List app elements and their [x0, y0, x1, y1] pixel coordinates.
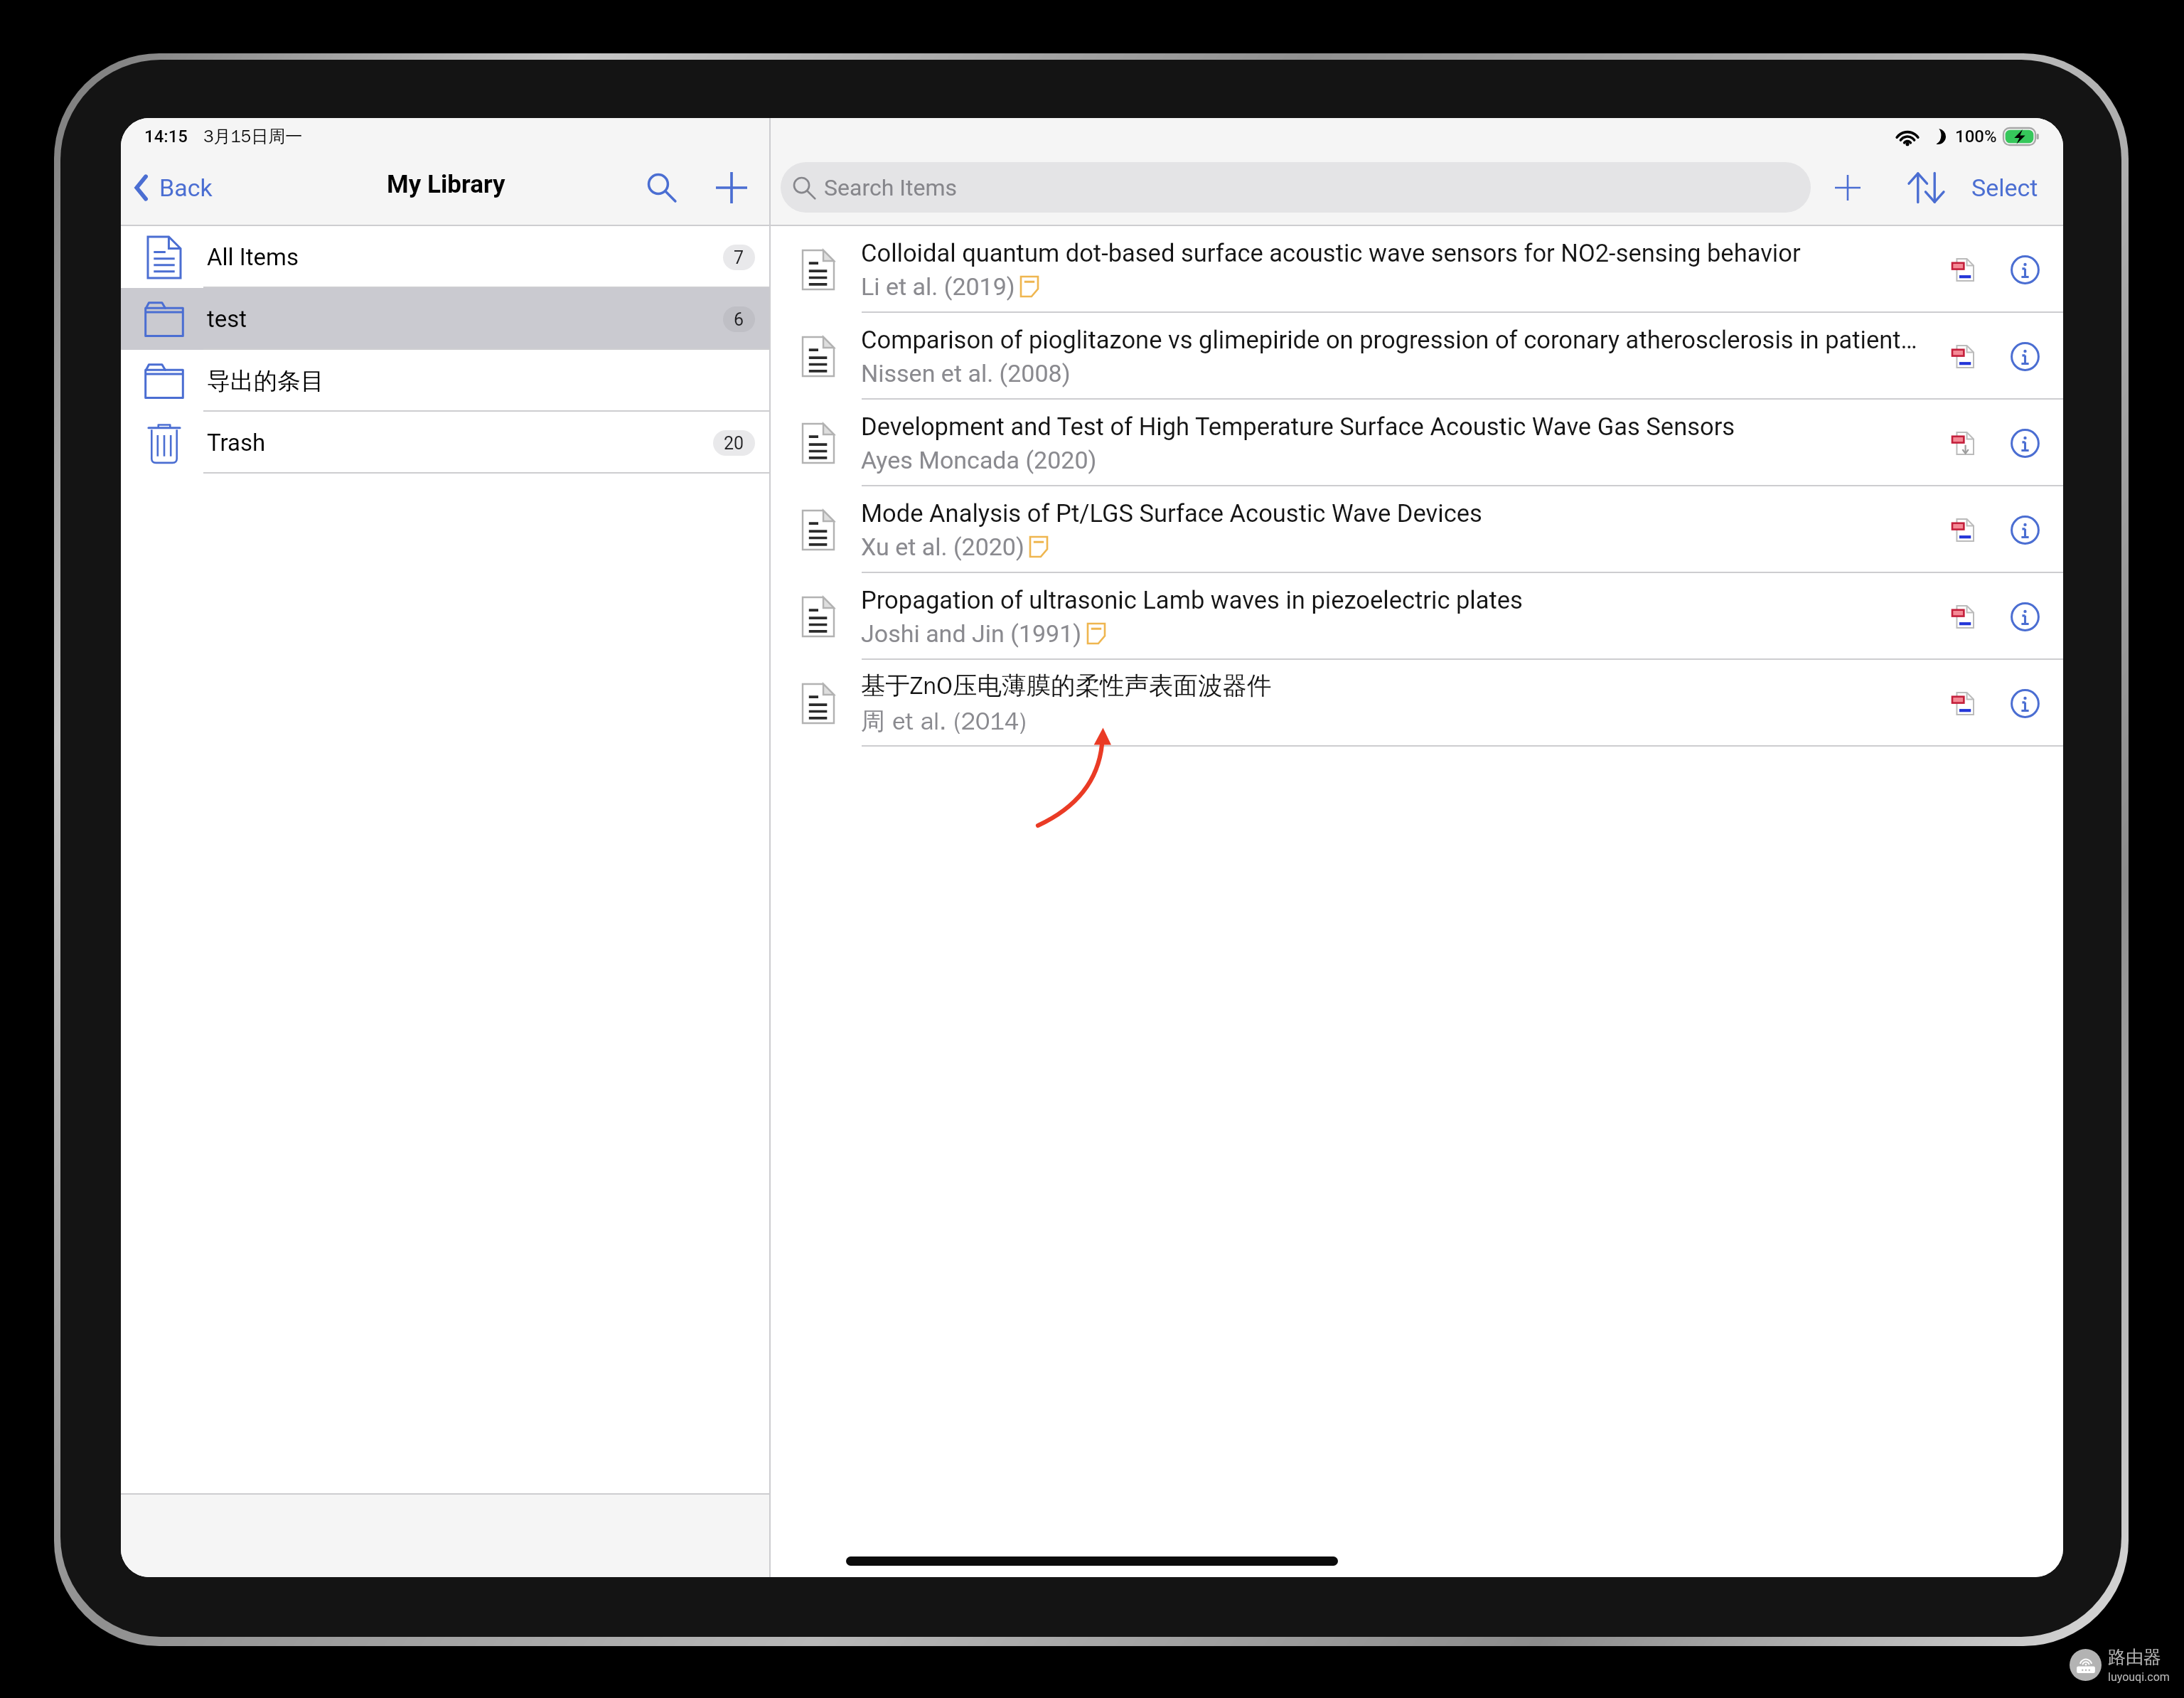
staticText: 3月15日周一 [203, 126, 303, 147]
button[interactable]: Trash [121, 412, 769, 474]
button[interactable]: Comparison of pioglitazone vs glimepirid… [771, 313, 2063, 400]
staticText: Comparison of pioglitazone vs glimepirid… [861, 326, 1926, 354]
button[interactable]: PDF attachment [1940, 247, 1986, 292]
staticText: Back [159, 173, 213, 202]
button[interactable]: Back [134, 150, 213, 225]
button[interactable]: PDF attachment [1940, 333, 1986, 379]
staticText: 7 [734, 247, 744, 268]
button[interactable]: All Items [121, 226, 769, 288]
button[interactable]: Mode Analysis of Pt/LGS Surface Acoustic… [771, 486, 2063, 573]
staticText: Search Items [824, 174, 957, 201]
button[interactable]: PDF attachment [1940, 507, 1986, 552]
staticText: luyouqi.com [2108, 1670, 2170, 1684]
staticText: Mode Analysis of Pt/LGS Surface Acoustic… [861, 499, 1482, 528]
staticText: Nissen et al. (2008) [861, 359, 1071, 388]
staticText: 6 [734, 309, 744, 330]
button[interactable]: Info [2002, 594, 2047, 639]
staticText: Joshi and Jin (1991) [861, 619, 1082, 648]
button[interactable]: Sort [1896, 158, 1956, 218]
staticText: 100% [1955, 127, 1997, 146]
staticText: 20 [724, 433, 744, 454]
staticText: test [207, 305, 247, 333]
button[interactable]: 基于ZnO压电薄膜的柔性声表面波器件 [771, 660, 2063, 747]
button[interactable]: Colloidal quantum dot-based surface acou… [771, 226, 2063, 313]
button[interactable]: Add collection [708, 164, 755, 211]
staticText: Trash [207, 429, 266, 456]
button[interactable]: Development and Test of High Temperature… [771, 400, 2063, 486]
button[interactable]: Info [2002, 680, 2047, 726]
staticText: 14:15 [144, 127, 188, 146]
staticText: Propagation of ultrasonic Lamb waves in … [861, 586, 1523, 614]
staticText: Select [1971, 173, 2038, 202]
staticText: Ayes Moncada (2020) [861, 446, 1097, 474]
staticText: Xu et al. (2020) [861, 533, 1024, 561]
staticText: 导出的条目 [207, 366, 324, 396]
button[interactable]: Add item [1818, 158, 1878, 218]
button[interactable]: PDF attachment [1940, 594, 1986, 639]
staticText: 基于ZnO压电薄膜的柔性声表面波器件 [861, 671, 1272, 701]
button[interactable]: Select [1966, 158, 2044, 218]
button[interactable]: Info [2002, 247, 2047, 292]
button[interactable]: Search [638, 164, 685, 211]
button[interactable]: Search Items [781, 162, 1811, 213]
staticText: All Items [207, 243, 299, 271]
staticText: 周 et al. (2014) [861, 706, 1027, 737]
button[interactable]: Info [2002, 333, 2047, 379]
button[interactable]: Info [2002, 420, 2047, 466]
staticText: Li et al. (2019) [861, 272, 1015, 301]
staticText: My Library [387, 170, 505, 199]
staticText: Development and Test of High Temperature… [861, 412, 1735, 441]
button[interactable]: PDF attachment [1940, 680, 1986, 726]
button[interactable]: 导出的条目 [121, 350, 769, 412]
button[interactable]: Propagation of ultrasonic Lamb waves in … [771, 573, 2063, 660]
button[interactable]: PDF attachment [1940, 420, 1986, 466]
button[interactable]: Info [2002, 507, 2047, 552]
staticText: 路由器 [2108, 1646, 2161, 1668]
button[interactable]: test [121, 288, 769, 350]
staticText: Colloidal quantum dot-based surface acou… [861, 239, 1801, 267]
